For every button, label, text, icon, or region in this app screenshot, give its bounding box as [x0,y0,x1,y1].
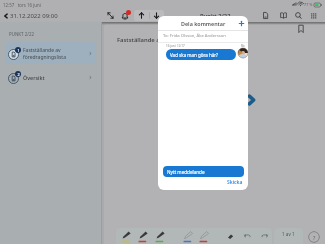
button[interactable]: 1 [5,42,96,64]
staticText: Dela kommentar [181,20,226,27]
staticText: Fastställande av föredragningslista [23,47,88,60]
button[interactable]: Search [294,11,303,20]
staticText: Me [241,44,245,48]
staticText: 1 av 1 [282,231,295,237]
button[interactable]: Pen [153,228,167,244]
button[interactable]: 2 [5,69,96,85]
button[interactable]: Notifications [120,11,130,21]
staticText: 12:57 tors 16 juni [3,2,41,8]
staticText: To: Frida Olsson, Åke Andersson [163,33,226,39]
other: Bookmark [296,24,306,34]
button[interactable]: Pen [181,228,195,244]
button[interactable]: Help [308,231,320,243]
staticText: Översikt [23,74,88,81]
staticText: Punkt 2/22 [200,12,231,20]
button[interactable]: Back [2,12,60,20]
staticText: PUNKT 2/22 [9,31,34,37]
staticText: Nytt meddelande [167,169,205,175]
button[interactable]: Eraser [223,228,237,244]
staticText: Vad ska man göra här? [170,52,219,58]
button[interactable]: Pen [197,228,211,244]
button[interactable]: Next [149,10,164,21]
staticText: ? [313,234,316,241]
button[interactable]: 1 av 1 [274,228,303,244]
button[interactable]: Library [279,11,288,20]
button[interactable]: Previous [134,10,149,21]
button[interactable]: Redo [257,228,271,244]
staticText: Fastställande a [117,36,160,44]
staticText: 1 [17,48,20,53]
staticText: 77 % [304,2,313,7]
button[interactable]: Undo [240,228,254,244]
button[interactable]: Grid [309,11,318,20]
staticText: 2 [17,72,20,77]
button[interactable]: Pen [119,228,133,244]
other: Back [2,12,10,20]
button[interactable]: Skicka [227,179,243,186]
button[interactable]: Add recipient [238,20,245,27]
staticText: 31.12.2022 09:00 [10,12,58,20]
button[interactable]: Collapse [106,11,115,20]
button[interactable]: Pen [136,228,150,244]
button[interactable]: Document [261,11,270,20]
staticText: 16 juni 12:17 [166,44,185,48]
